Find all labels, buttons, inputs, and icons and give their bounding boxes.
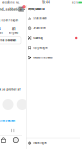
staticText: vodafone NL: [2, 1, 20, 4]
button[interactable]: beyond_sabbatical: [26, 5, 80, 13]
button[interactable]: Statistieken: [26, 13, 80, 23]
staticText: 19:44: [42, 1, 50, 4]
staticText: Statistieken: [33, 17, 46, 20]
button[interactable]: Mensen ontdekken: [26, 53, 80, 62]
button[interactable]: Instellingen: [26, 138, 80, 148]
staticText: Nog open 7 dagen: [0, 19, 17, 22]
staticText: posts: [0, 31, 2, 34]
button[interactable]: Opgeslagen: [26, 43, 80, 53]
staticText: Je activiteit: [33, 27, 46, 30]
staticText: Opgeslagen: [33, 46, 47, 49]
button[interactable]: Naamtag: [26, 33, 80, 43]
staticText: Alles bekijken: [0, 119, 15, 122]
staticText: Maak je profiel af: [0, 88, 20, 91]
staticText: 82%: [72, 1, 78, 4]
staticText: Naamtag: [33, 36, 43, 40]
staticText: Mensen ontdekken: [33, 56, 52, 59]
staticText: beyond_sabbatical: [28, 8, 45, 11]
staticText: beyond_sabbatical: [0, 7, 22, 11]
staticText: volgend: [8, 31, 18, 34]
staticText: Instellingen: [33, 142, 46, 145]
button[interactable]: Je activiteit: [26, 23, 80, 33]
staticText: Profiel bewerken: [0, 39, 16, 42]
staticText: 81: [12, 27, 15, 31]
